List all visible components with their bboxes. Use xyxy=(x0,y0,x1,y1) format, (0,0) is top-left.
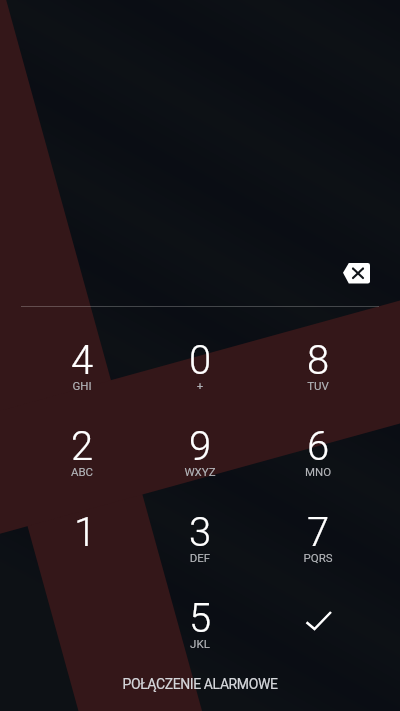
staticText: 5 xyxy=(120,595,280,642)
button[interactable] xyxy=(141,587,259,673)
staticText: WXYZ xyxy=(120,465,280,478)
staticText: 2 xyxy=(2,423,162,470)
staticText: DEF xyxy=(120,551,280,564)
staticText: 4 xyxy=(2,337,162,384)
staticText: PQRS xyxy=(238,551,398,564)
staticText: 3 xyxy=(120,509,280,556)
button[interactable] xyxy=(23,329,141,415)
button[interactable] xyxy=(23,501,141,587)
staticText: 6 xyxy=(238,423,398,470)
button[interactable] xyxy=(23,415,141,501)
staticText: 7 xyxy=(238,509,398,556)
button[interactable] xyxy=(110,671,290,707)
staticText: 0 xyxy=(120,337,280,384)
button[interactable]: Backspace xyxy=(336,253,376,293)
button[interactable] xyxy=(141,329,259,415)
staticText: GHI xyxy=(2,379,162,392)
button[interactable] xyxy=(259,329,377,415)
button[interactable] xyxy=(259,415,377,501)
staticText: 1 xyxy=(5,509,165,556)
button[interactable]: Enter xyxy=(259,588,377,674)
staticText: + xyxy=(120,379,280,392)
staticText: 9 xyxy=(120,423,280,470)
staticText: POŁĄCZENIE ALARMOWE xyxy=(60,676,340,692)
staticText: ABC xyxy=(2,465,162,478)
staticText: MNO xyxy=(238,465,398,478)
button[interactable] xyxy=(141,501,259,587)
button[interactable] xyxy=(259,501,377,587)
staticText: TUV xyxy=(238,379,398,392)
button[interactable] xyxy=(141,415,259,501)
staticText: 8 xyxy=(238,337,398,384)
staticText: JKL xyxy=(120,637,280,650)
